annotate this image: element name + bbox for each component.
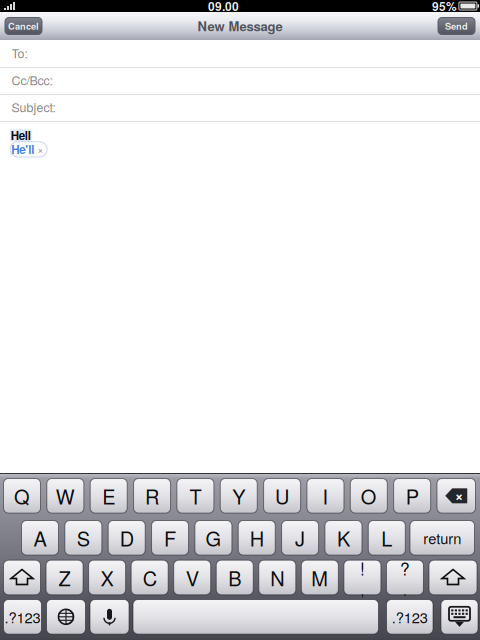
staticText: P [406, 481, 419, 510]
staticText: Cancel [8, 19, 39, 33]
staticText: Cc/Bcc: [11, 71, 52, 89]
staticText: O [361, 481, 377, 510]
staticText: S [77, 523, 90, 552]
button[interactable]: W [47, 478, 84, 513]
staticText: V [186, 563, 199, 592]
button[interactable]: .?123 [3, 599, 41, 634]
staticText: Hell [11, 127, 31, 144]
staticText: return [423, 527, 461, 548]
button[interactable]: Cancel [5, 17, 42, 34]
button[interactable]: Y [220, 478, 257, 513]
button[interactable]: T [177, 478, 214, 513]
staticText: F [164, 523, 176, 552]
button[interactable]: Next keyboard [46, 599, 85, 634]
staticText: Q [14, 481, 30, 510]
staticText: To: [11, 44, 27, 62]
button[interactable]: Shift [429, 560, 477, 595]
button[interactable]: Dictate [90, 599, 129, 634]
button[interactable]: ! [344, 560, 381, 595]
staticText: J [295, 523, 305, 552]
staticText: Z [58, 563, 70, 592]
button[interactable]: L [368, 520, 405, 555]
button[interactable]: Z [46, 560, 83, 595]
staticText: N [270, 563, 284, 592]
button[interactable]: He'll [10, 142, 47, 157]
staticText: 09.00 [208, 0, 239, 15]
staticText: U [275, 481, 289, 510]
staticText: X [101, 563, 114, 592]
button[interactable]: B [216, 560, 253, 595]
button[interactable]: N [259, 560, 296, 595]
staticText: × [455, 485, 464, 506]
staticText: A [33, 523, 46, 552]
button[interactable]: F [152, 520, 189, 555]
staticText: × [37, 142, 43, 157]
staticText: D [120, 523, 134, 552]
button[interactable]: U [264, 478, 301, 513]
staticText: K [337, 523, 350, 552]
staticText: . [403, 580, 407, 599]
button[interactable]: ? [386, 560, 423, 595]
staticText: New Message [197, 17, 282, 35]
staticText: L [381, 523, 392, 552]
staticText: Subject: [11, 98, 55, 116]
staticText: C [143, 563, 157, 592]
staticText: .?123 [4, 606, 40, 627]
button[interactable]: A [21, 520, 58, 555]
button[interactable]: J [282, 520, 319, 555]
staticText: H [250, 523, 264, 552]
staticText: T [189, 481, 201, 510]
staticText: He'll [11, 141, 34, 158]
button[interactable]: K [325, 520, 362, 555]
button[interactable]: R [134, 478, 171, 513]
button[interactable]: .?123 [386, 599, 433, 634]
staticText: .?123 [392, 606, 428, 627]
button[interactable]: P [394, 478, 431, 513]
button[interactable]: D [108, 520, 145, 555]
button[interactable]: Q [3, 478, 40, 513]
staticText: G [205, 523, 221, 552]
button[interactable]: I [307, 478, 344, 513]
button[interactable]: Space [133, 599, 378, 634]
staticText: 95% [432, 0, 457, 15]
button[interactable]: E [90, 478, 127, 513]
button[interactable]: Shift [3, 560, 40, 595]
button[interactable]: V [174, 560, 211, 595]
staticText: ! [360, 555, 365, 580]
staticText: M [311, 563, 328, 592]
staticText: I [322, 481, 328, 510]
staticText: Y [232, 481, 245, 510]
staticText: E [102, 481, 115, 510]
button[interactable]: Hide keyboard [441, 599, 478, 634]
staticText: B [228, 563, 241, 592]
staticText: Send [445, 19, 468, 33]
button[interactable]: O [350, 478, 387, 513]
button[interactable]: Send [438, 17, 475, 34]
staticText: , [360, 580, 364, 599]
staticText: ? [400, 555, 410, 580]
button[interactable]: H [238, 520, 275, 555]
staticText: W [56, 481, 75, 510]
button[interactable]: S [65, 520, 102, 555]
button[interactable]: return [410, 520, 474, 555]
button[interactable]: G [195, 520, 232, 555]
staticText: R [145, 481, 159, 510]
button[interactable]: C [131, 560, 168, 595]
button[interactable]: X [89, 560, 126, 595]
button[interactable]: Delete [437, 478, 475, 513]
button[interactable]: M [301, 560, 338, 595]
